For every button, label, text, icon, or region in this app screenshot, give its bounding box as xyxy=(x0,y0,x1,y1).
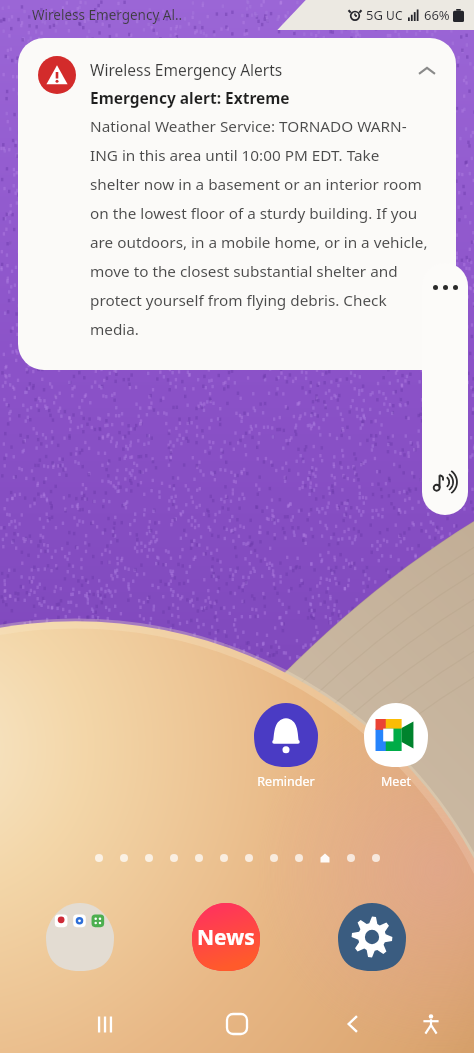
staticText: News xyxy=(197,923,255,952)
button[interactable]: Accessibility xyxy=(408,1001,454,1047)
staticText: Wireless Emergency Alerts xyxy=(90,59,283,80)
staticText: National Weather Service: TORNADO WARN- xyxy=(90,116,407,137)
button[interactable]: Reminder xyxy=(250,703,322,790)
button[interactable]: News xyxy=(186,897,266,977)
button[interactable]: Media panel xyxy=(422,263,468,515)
button[interactable]: Collapse notification xyxy=(412,56,442,86)
staticText: Emergency alert: Extreme xyxy=(90,87,290,108)
staticText: Wireless Emergency Al.. xyxy=(32,6,183,24)
staticText: ING in this area until 10:00 PM EDT. Tak… xyxy=(90,145,380,166)
staticText: shelter now in a basement or an interior… xyxy=(90,174,422,195)
button[interactable]: Home xyxy=(214,1001,260,1047)
button[interactable]: Meet xyxy=(360,703,432,790)
staticText: Reminder xyxy=(257,773,315,790)
button[interactable]: Folder xyxy=(40,897,120,977)
button[interactable]: Recents xyxy=(83,1001,129,1047)
staticText: 5G xyxy=(366,6,383,24)
staticText: media. xyxy=(90,319,139,340)
staticText: move to the closest substantial shelter … xyxy=(90,261,398,282)
button[interactable]: Settings xyxy=(332,897,412,977)
staticText: UC xyxy=(383,7,403,23)
staticText: protect yourself from flying debris. Che… xyxy=(90,290,387,311)
staticText: on the lowest floor of a sturdy building… xyxy=(90,203,418,224)
staticText: Meet xyxy=(381,773,411,790)
button[interactable]: Collapse notification xyxy=(18,38,456,370)
button[interactable]: Back xyxy=(330,1001,376,1047)
staticText: 66% xyxy=(424,6,450,24)
staticText: are outdoors, in a mobile home, or in a … xyxy=(90,232,428,253)
